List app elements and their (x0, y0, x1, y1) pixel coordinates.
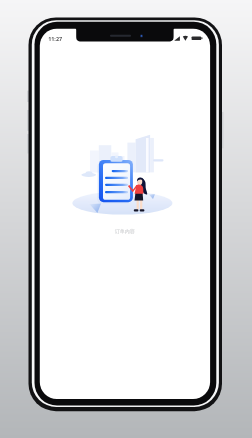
button[interactable]: Order content empty state (0, 0, 252, 438)
